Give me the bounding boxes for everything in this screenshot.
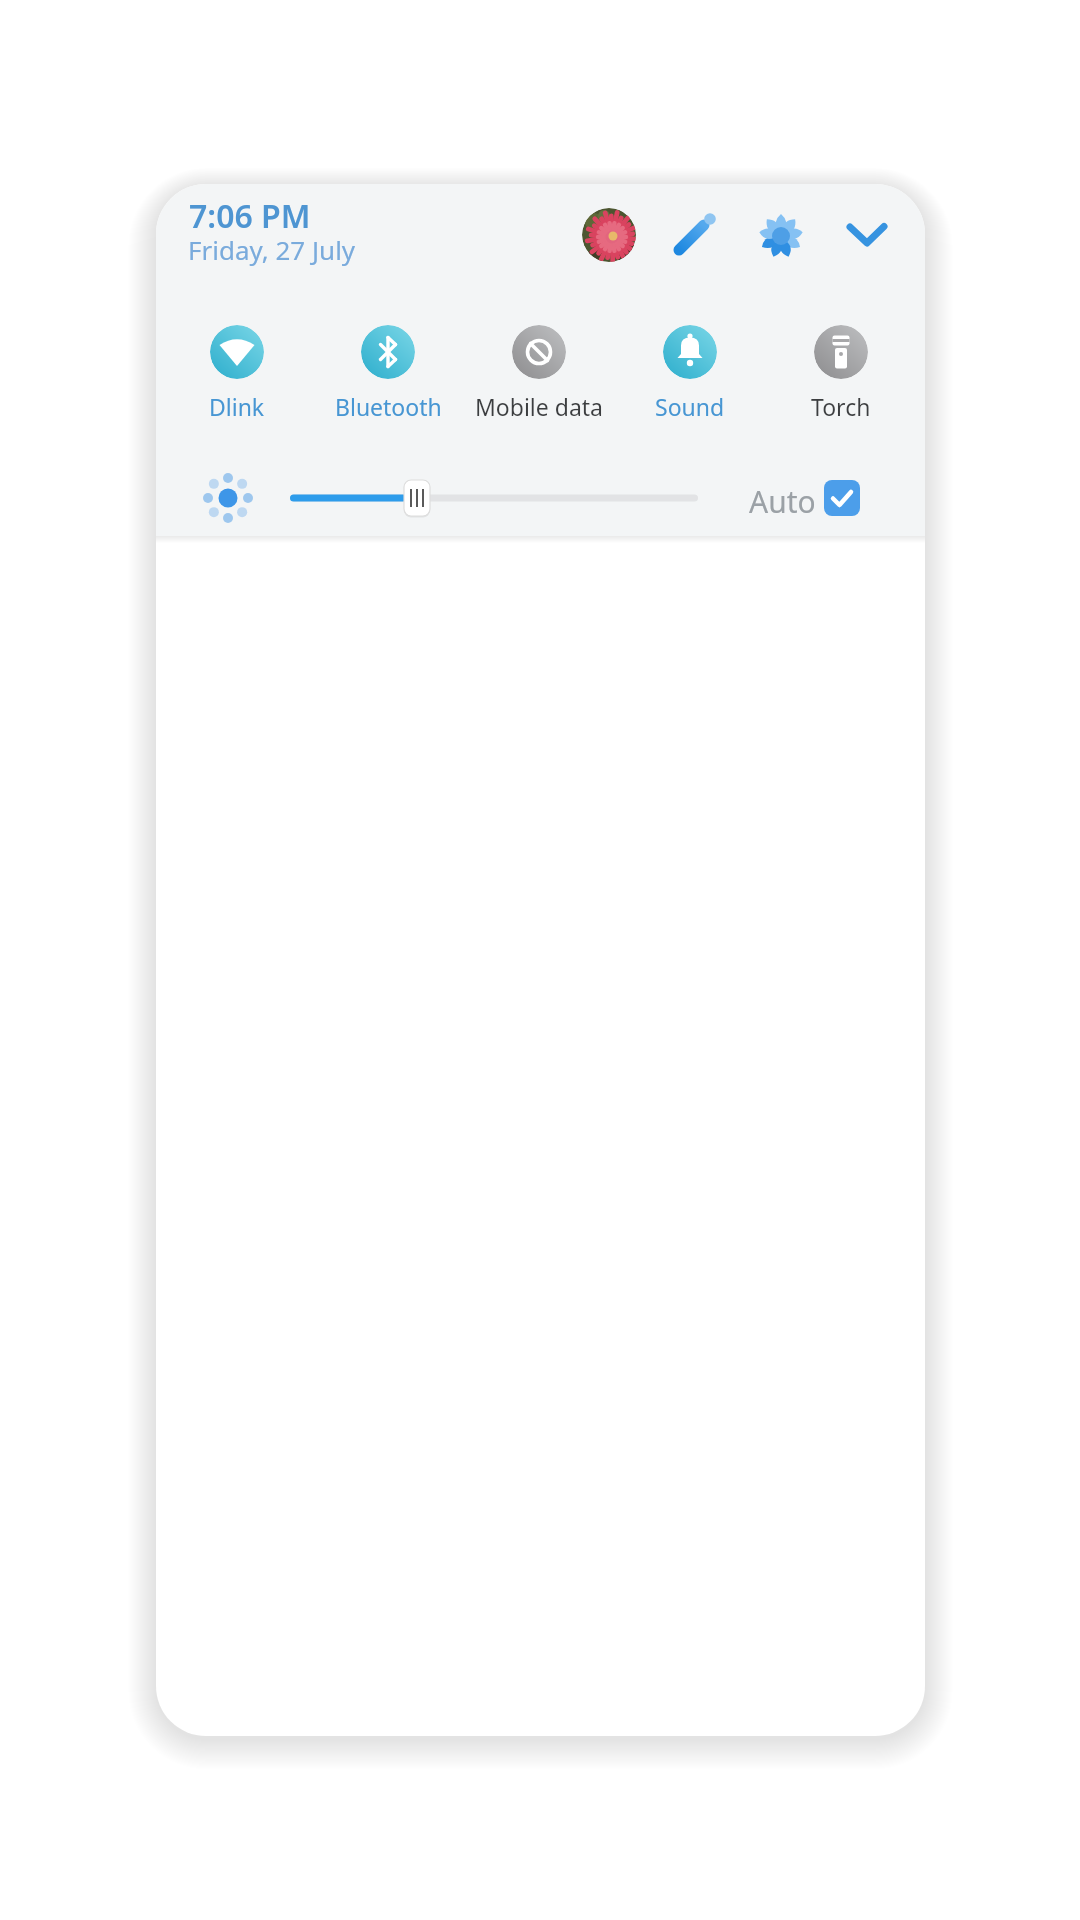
- button[interactable]: Sound: [615, 388, 765, 424]
- staticText: Sound: [655, 391, 725, 422]
- button[interactable]: [814, 325, 868, 379]
- button[interactable]: [512, 325, 566, 379]
- button[interactable]: [666, 208, 720, 262]
- staticText: Auto: [749, 481, 816, 522]
- button[interactable]: [663, 325, 717, 379]
- staticText: Bluetooth: [335, 391, 442, 422]
- button[interactable]: Dlink: [162, 388, 312, 424]
- button[interactable]: [751, 205, 811, 265]
- button[interactable]: [839, 208, 893, 262]
- staticText: Dlink: [209, 391, 265, 422]
- button[interactable]: [824, 480, 860, 516]
- button[interactable]: [201, 471, 255, 525]
- button[interactable]: Torch: [766, 388, 916, 424]
- button[interactable]: [361, 325, 415, 379]
- button[interactable]: Mobile data: [464, 388, 614, 424]
- button[interactable]: [582, 208, 636, 262]
- button[interactable]: [290, 471, 698, 525]
- staticText: 7:06 PM: [189, 194, 311, 238]
- button[interactable]: [210, 325, 264, 379]
- button[interactable]: Bluetooth: [313, 388, 463, 424]
- staticText: Torch: [811, 391, 871, 422]
- staticText: Friday, 27 July: [188, 232, 356, 267]
- staticText: Mobile data: [475, 391, 603, 422]
